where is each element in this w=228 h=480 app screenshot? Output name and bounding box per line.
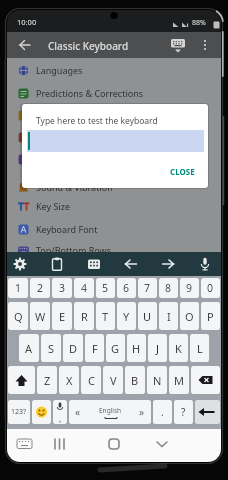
button[interactable]	[99, 429, 129, 459]
button[interactable]	[152, 429, 182, 459]
staticText: N	[153, 373, 162, 388]
staticText: Q	[14, 309, 23, 324]
staticText: Key Size	[36, 200, 70, 212]
staticText: 8	[165, 281, 172, 295]
staticText: »	[139, 405, 145, 419]
button[interactable]: G	[106, 334, 125, 362]
button[interactable]	[7, 32, 33, 58]
staticText: Predictions & Corrections	[36, 87, 144, 99]
button[interactable]	[118, 252, 144, 276]
staticText: Classic Keyboard	[48, 39, 129, 53]
button[interactable]: C	[81, 366, 101, 394]
button[interactable]: I	[159, 302, 178, 330]
staticText: E	[59, 309, 66, 324]
button[interactable]: D	[63, 334, 83, 362]
staticText: G	[111, 341, 120, 356]
staticText: 4	[81, 281, 88, 295]
staticText: P	[207, 309, 214, 324]
staticText: Y	[123, 309, 130, 324]
button[interactable]: H	[127, 334, 146, 362]
button[interactable]	[45, 429, 75, 459]
staticText: U	[143, 309, 152, 324]
button[interactable]	[195, 32, 221, 58]
staticText: Type here to test the keyboard	[36, 115, 158, 127]
button[interactable]: X	[59, 366, 79, 394]
staticText: H	[132, 341, 141, 356]
button[interactable]	[81, 252, 107, 276]
staticText: Z	[44, 373, 51, 388]
button[interactable]	[32, 400, 51, 424]
button[interactable]: 5	[96, 278, 115, 298]
button[interactable]: 8	[159, 278, 178, 298]
button[interactable]: J	[148, 334, 167, 362]
staticText: Languages	[36, 64, 83, 76]
staticText: X	[66, 373, 73, 388]
staticText: Sound & Vibration	[36, 181, 113, 193]
button[interactable]: 9	[180, 278, 199, 298]
button[interactable]	[195, 400, 220, 424]
button[interactable]: Z	[37, 366, 57, 394]
button[interactable]: 123?	[8, 400, 30, 424]
button[interactable]: 6	[117, 278, 136, 298]
button[interactable]: R	[74, 302, 94, 330]
button[interactable]: V	[103, 366, 123, 394]
button[interactable]: 0	[201, 278, 220, 298]
staticText: Top/Bottom Rows	[36, 244, 111, 256]
staticText: ,	[59, 412, 62, 424]
button[interactable]: 3	[52, 278, 72, 298]
button[interactable]: .	[153, 400, 172, 424]
button[interactable]: Languages	[7, 59, 221, 81]
button[interactable]	[8, 366, 35, 394]
button[interactable]: U	[138, 302, 157, 330]
button[interactable]: 4	[74, 278, 94, 298]
staticText: 3	[59, 281, 66, 295]
button[interactable]: «	[69, 400, 151, 424]
button[interactable]: O	[180, 302, 199, 330]
button[interactable]: E	[52, 302, 72, 330]
staticText: CLOSE	[170, 166, 195, 177]
staticText: 10:00	[17, 17, 37, 27]
staticText: B	[131, 373, 139, 388]
staticText: 1	[15, 281, 22, 295]
staticText: C	[88, 373, 95, 388]
staticText: 7	[144, 281, 151, 295]
button[interactable]: 7	[138, 278, 157, 298]
button[interactable]: ?	[174, 400, 193, 424]
button[interactable]: P	[201, 302, 220, 330]
button[interactable]: F	[85, 334, 104, 362]
button[interactable]: S	[41, 334, 61, 362]
button[interactable]: Key Size	[7, 195, 221, 217]
staticText: 88%	[192, 18, 206, 28]
button[interactable]	[7, 104, 221, 126]
button[interactable]	[7, 126, 221, 148]
button[interactable]: 1	[8, 278, 28, 298]
button[interactable]: N	[147, 366, 167, 394]
button[interactable]	[44, 252, 70, 276]
staticText: 2	[37, 281, 44, 295]
button[interactable]: CLOSE	[160, 160, 204, 182]
button[interactable]: Top/Bottom Rows	[7, 239, 221, 261]
staticText: 0	[207, 281, 214, 295]
button[interactable]: A	[19, 334, 39, 362]
button[interactable]: M	[169, 366, 189, 394]
button[interactable]: Sound & Vibration	[7, 176, 221, 198]
button[interactable]: ,	[53, 400, 67, 424]
button[interactable]	[155, 252, 181, 276]
button[interactable]	[7, 148, 221, 170]
button[interactable]: W	[30, 302, 50, 330]
staticText: ?	[181, 405, 186, 419]
button[interactable]: Y	[117, 302, 136, 330]
button[interactable]: K	[169, 334, 188, 362]
button[interactable]	[163, 32, 193, 58]
button[interactable]	[7, 252, 33, 276]
button[interactable]: L	[190, 334, 209, 362]
button[interactable]	[191, 366, 220, 394]
button[interactable]: 2	[30, 278, 50, 298]
button[interactable]: Predictions & Corrections	[7, 82, 221, 104]
button[interactable]	[192, 252, 218, 276]
button[interactable]: Q	[8, 302, 28, 330]
staticText: S	[48, 341, 55, 356]
button[interactable]: T	[96, 302, 115, 330]
button[interactable]: B	[125, 366, 145, 394]
button[interactable]: Keyboard Font	[7, 218, 221, 240]
